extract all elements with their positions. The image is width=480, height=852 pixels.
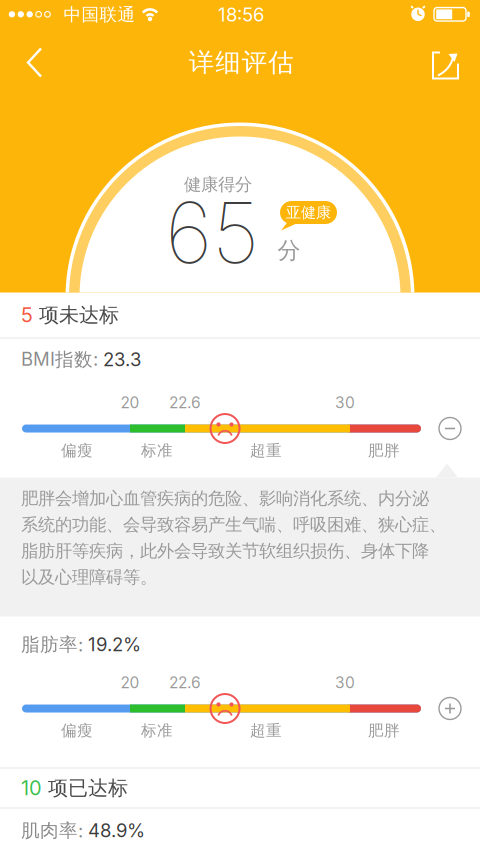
staticText: 20 [120, 393, 139, 412]
staticText: 详细评估 [189, 47, 293, 78]
staticText: 肥胖会增加心血管疾病的危险、影响消化系统、内分泌 系统的功能、会导致容易产生气喘… [21, 487, 446, 588]
staticText: 23.3 [103, 348, 141, 371]
staticText: 22.6 [169, 673, 201, 692]
button[interactable]: Collapse [432, 410, 468, 446]
staticText: 偏瘦 [61, 441, 93, 460]
staticText: 中国联通 [63, 4, 135, 26]
staticText: 偏瘦 [61, 721, 93, 740]
staticText: 30 [335, 393, 355, 412]
staticText: 肥胖 [368, 441, 400, 460]
staticText: 5 [21, 303, 33, 327]
staticText: 18:56 [218, 3, 264, 26]
button[interactable]: Share [422, 42, 466, 86]
staticText: 标准 [141, 441, 173, 460]
staticText: 分 [277, 236, 300, 265]
staticText: 脂肪率: [21, 633, 88, 656]
staticText: 30 [335, 673, 355, 692]
staticText: 10 [21, 776, 42, 800]
staticText: 超重 [250, 441, 282, 460]
button[interactable]: Back [16, 40, 60, 84]
staticText: 22.6 [169, 393, 201, 412]
staticText: 亚健康 [286, 203, 331, 222]
staticText: 项未达标 [33, 302, 119, 328]
staticText: 48.9% [88, 819, 145, 842]
staticText: 肥胖 [368, 721, 400, 740]
staticText: 65 [165, 182, 259, 283]
staticText: 健康得分 [184, 174, 252, 195]
staticText: 项已达标 [42, 775, 128, 801]
staticText: BMI指数: [21, 348, 103, 371]
button[interactable]: Expand [432, 690, 468, 726]
staticText: 超重 [250, 721, 282, 740]
staticText: 标准 [141, 721, 173, 740]
staticText: 20 [120, 673, 139, 692]
staticText: 肌肉率: [21, 819, 88, 842]
staticText: 19.2% [88, 633, 141, 656]
